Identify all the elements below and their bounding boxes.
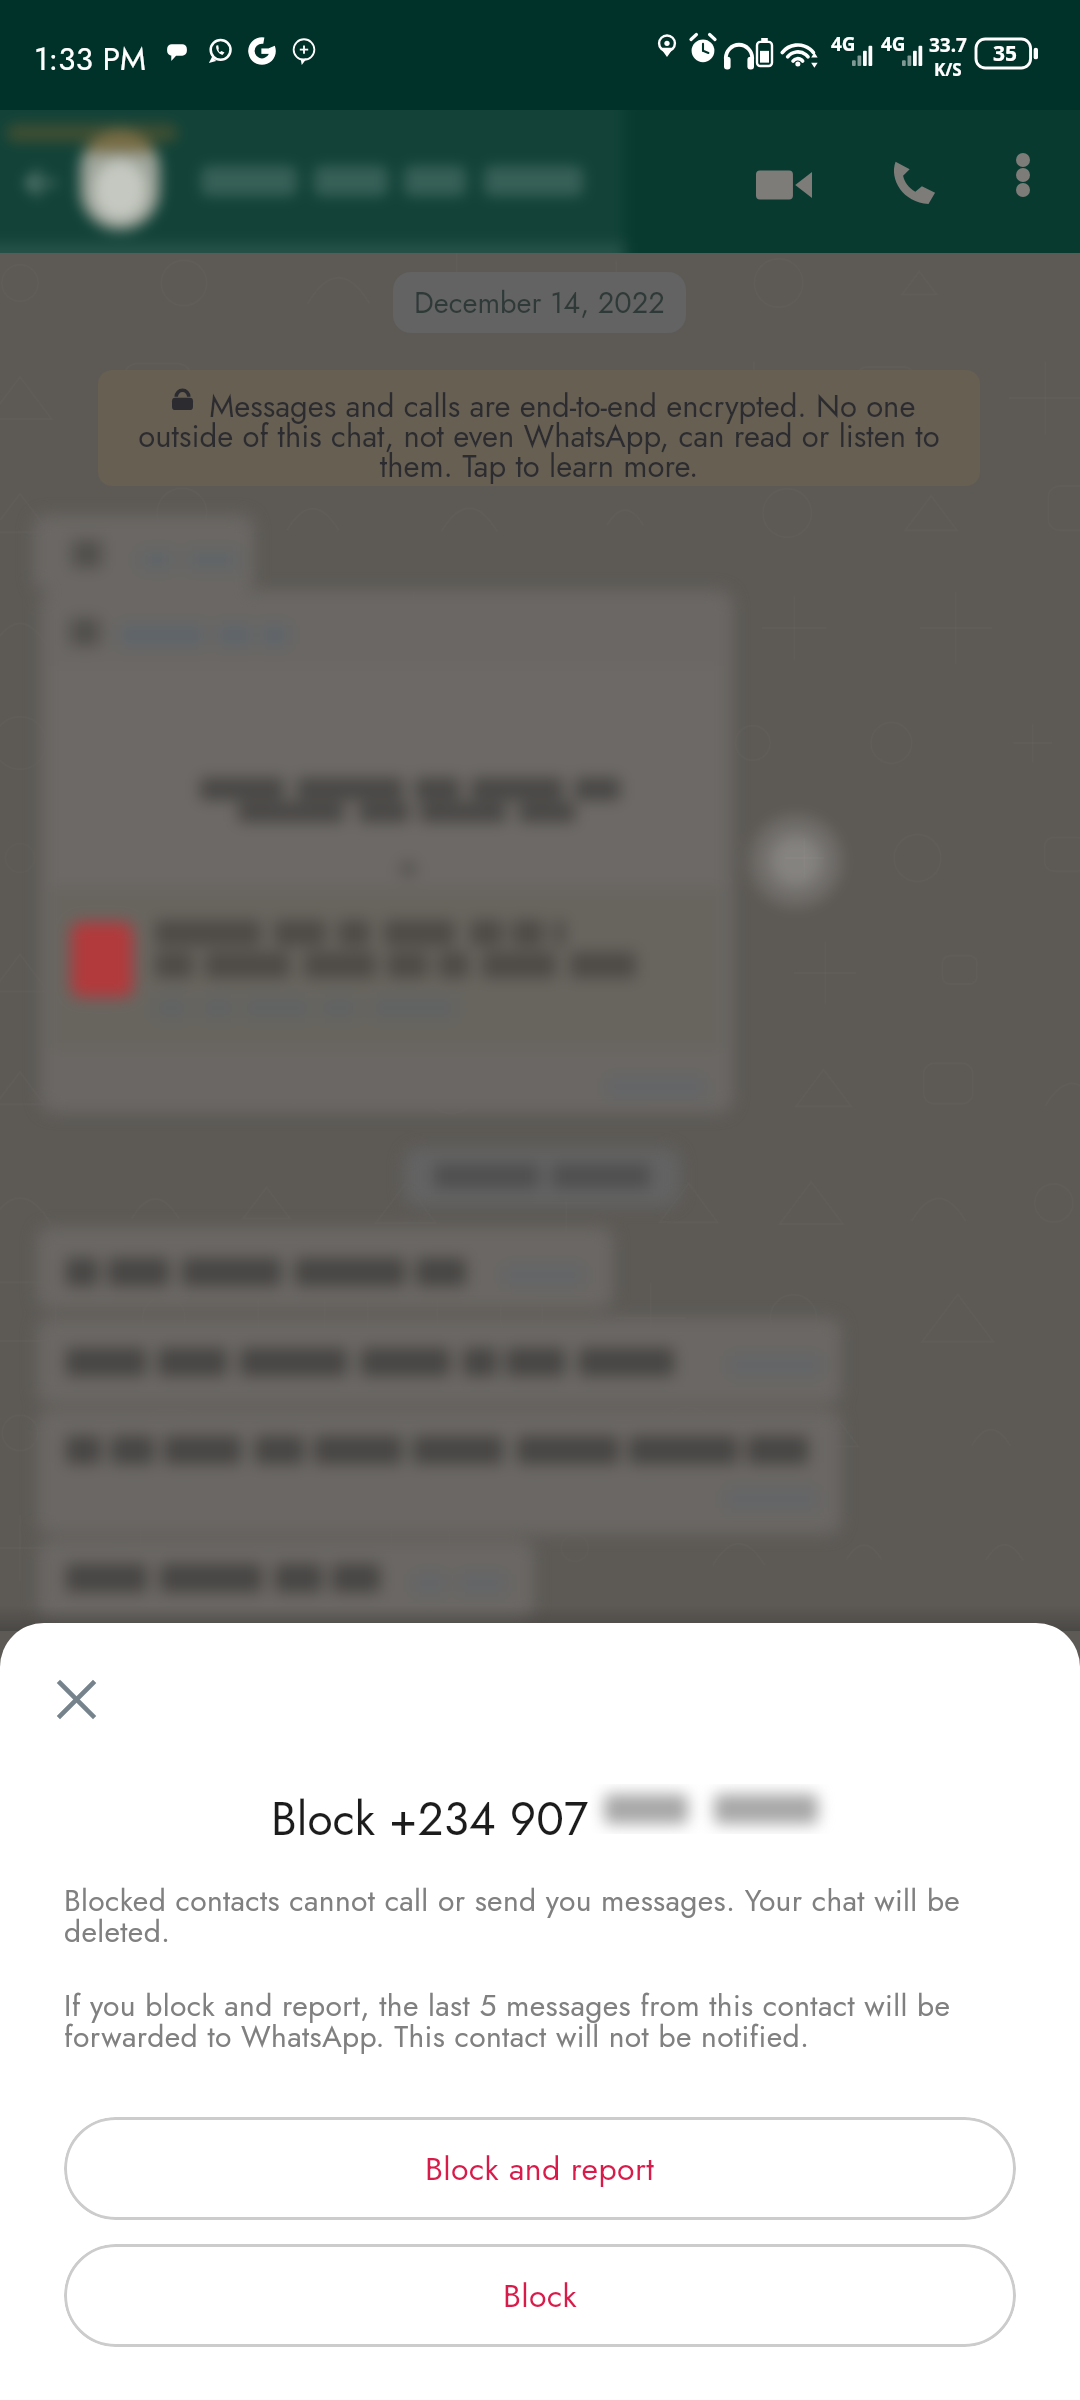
staticText: Block +234 907 [271, 1786, 589, 1852]
button[interactable]: Video call [735, 136, 833, 234]
staticText: 4G [831, 31, 856, 57]
button[interactable]: Close [39, 1662, 113, 1736]
staticText: Messages and calls are end-to-end encryp… [130, 384, 948, 486]
staticText: Block [503, 2273, 578, 2319]
button[interactable]: Voice call [864, 133, 960, 229]
staticText: December 14, 2022 [414, 282, 665, 324]
staticText: 4G [881, 31, 906, 57]
staticText: 35 [993, 39, 1018, 68]
staticText: Block and report [425, 2146, 655, 2192]
staticText: K/S [934, 58, 962, 81]
button[interactable]: Block and report [64, 2117, 1016, 2220]
staticText: If you block and report, the last 5 mess… [64, 1984, 980, 2058]
button[interactable]: Block [64, 2244, 1016, 2347]
button[interactable]: Messages and calls are end-to-end encryp… [98, 370, 980, 486]
staticText: 33.7 [929, 32, 967, 58]
staticText: Blocked contacts cannot call or send you… [64, 1879, 980, 1953]
button[interactable]: More options [982, 134, 1064, 216]
button[interactable]: December 14, 2022 [393, 272, 686, 333]
staticText: 1:33 PM [34, 36, 147, 82]
